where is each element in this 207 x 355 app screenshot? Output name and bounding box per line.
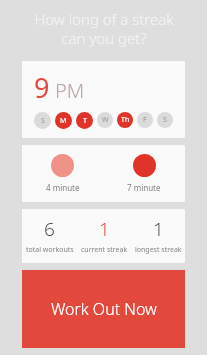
staticText: 1 [99, 216, 110, 242]
button[interactable]: Work Out Now [22, 270, 185, 348]
button[interactable]: 9 [22, 61, 185, 138]
button[interactable]: 1 [77, 216, 131, 255]
staticText: S [163, 115, 167, 125]
button[interactable]: F [137, 112, 153, 128]
staticText: S [41, 116, 45, 126]
button[interactable]: S [157, 112, 173, 128]
staticText: M [60, 116, 67, 126]
staticText: PM [55, 77, 85, 104]
staticText: How long of a streak can you get? [34, 9, 174, 48]
button[interactable]: 4 minute [22, 154, 103, 193]
other: 7 minute [133, 154, 156, 177]
button[interactable]: T [76, 112, 93, 129]
staticText: 4 minute [46, 182, 80, 193]
staticText: T [83, 116, 87, 126]
staticText: 1 [153, 216, 164, 242]
staticText: Work Out Now [51, 298, 157, 320]
staticText: W [102, 115, 109, 125]
staticText: 7 minute [127, 182, 161, 193]
button[interactable]: 1 [131, 216, 185, 255]
button[interactable]: 6 [22, 216, 77, 255]
staticText: F [143, 115, 147, 125]
button[interactable]: M [55, 112, 72, 129]
button[interactable]: Th [117, 112, 133, 128]
button[interactable]: 7 minute [103, 154, 185, 193]
staticText: 6 [44, 216, 55, 242]
staticText: total workouts [26, 245, 74, 255]
staticText: 9 [34, 69, 50, 106]
other: 4 minute [51, 154, 74, 177]
staticText: current streak [81, 245, 128, 255]
button[interactable]: W [97, 112, 113, 128]
button[interactable]: S [34, 112, 51, 129]
staticText: longest streak [135, 245, 182, 255]
staticText: Th [121, 115, 130, 125]
